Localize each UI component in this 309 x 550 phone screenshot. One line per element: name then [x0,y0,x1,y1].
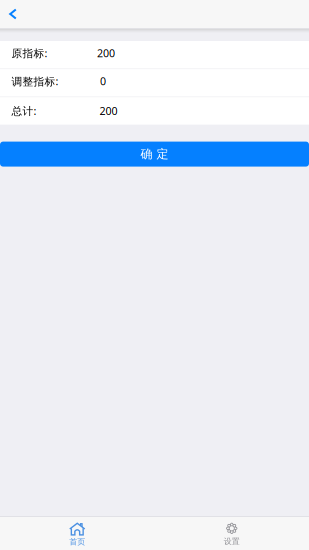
staticText: 调整指标: [11,74,58,88]
button[interactable]: 首页 [0,517,154,550]
button[interactable]: Back [0,0,26,28]
staticText: 原指标: [11,46,47,60]
staticText: 0 [100,74,106,88]
staticText: 确 定 [140,147,168,161]
staticText: 总计: [11,104,36,118]
button[interactable]: 确 定 [0,142,309,167]
staticText: 首页 [69,537,85,547]
staticText: 200 [100,104,118,118]
staticText: 200 [97,46,115,60]
button[interactable]: 设置 [154,517,309,550]
staticText: 设置 [224,536,240,546]
